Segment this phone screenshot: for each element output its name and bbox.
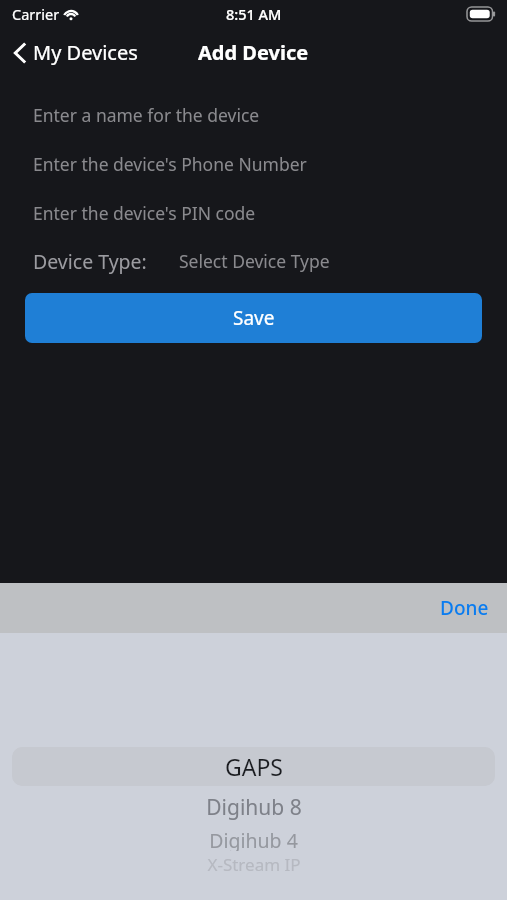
staticText: My Devices (33, 39, 138, 66)
staticText: Enter a name for the device (33, 103, 260, 127)
staticText: 8:51 AM (226, 4, 282, 24)
button[interactable]: Save (25, 293, 482, 343)
button[interactable]: Device Type: (0, 243, 507, 279)
staticText: Done (440, 595, 489, 621)
staticText: GAPS (225, 751, 283, 782)
staticText: X-Stream IP (207, 853, 301, 873)
button[interactable]: Digihub 8 (0, 793, 507, 821)
staticText: Add Device (198, 39, 309, 66)
staticText: Save (233, 305, 275, 331)
button[interactable]: Done (422, 587, 507, 629)
button[interactable]: Enter the device's PIN code (0, 195, 507, 230)
staticText: Carrier (12, 4, 60, 24)
staticText: Enter the device's PIN code (33, 201, 256, 225)
staticText: Select Device Type (179, 249, 330, 273)
button[interactable]: X-Stream IP (0, 853, 507, 873)
staticText: Digihub 4 (209, 827, 298, 851)
staticText: Device Type: (33, 248, 147, 275)
button[interactable]: Digihub 4 (0, 827, 507, 851)
staticText: Enter the device's Phone Number (33, 152, 307, 176)
button[interactable]: Enter a name for the device (0, 97, 507, 132)
staticText: Digihub 8 (206, 793, 302, 821)
button[interactable]: My Devices (0, 33, 148, 72)
button[interactable]: GAPS (0, 747, 507, 786)
button[interactable]: Enter the device's Phone Number (0, 146, 507, 181)
